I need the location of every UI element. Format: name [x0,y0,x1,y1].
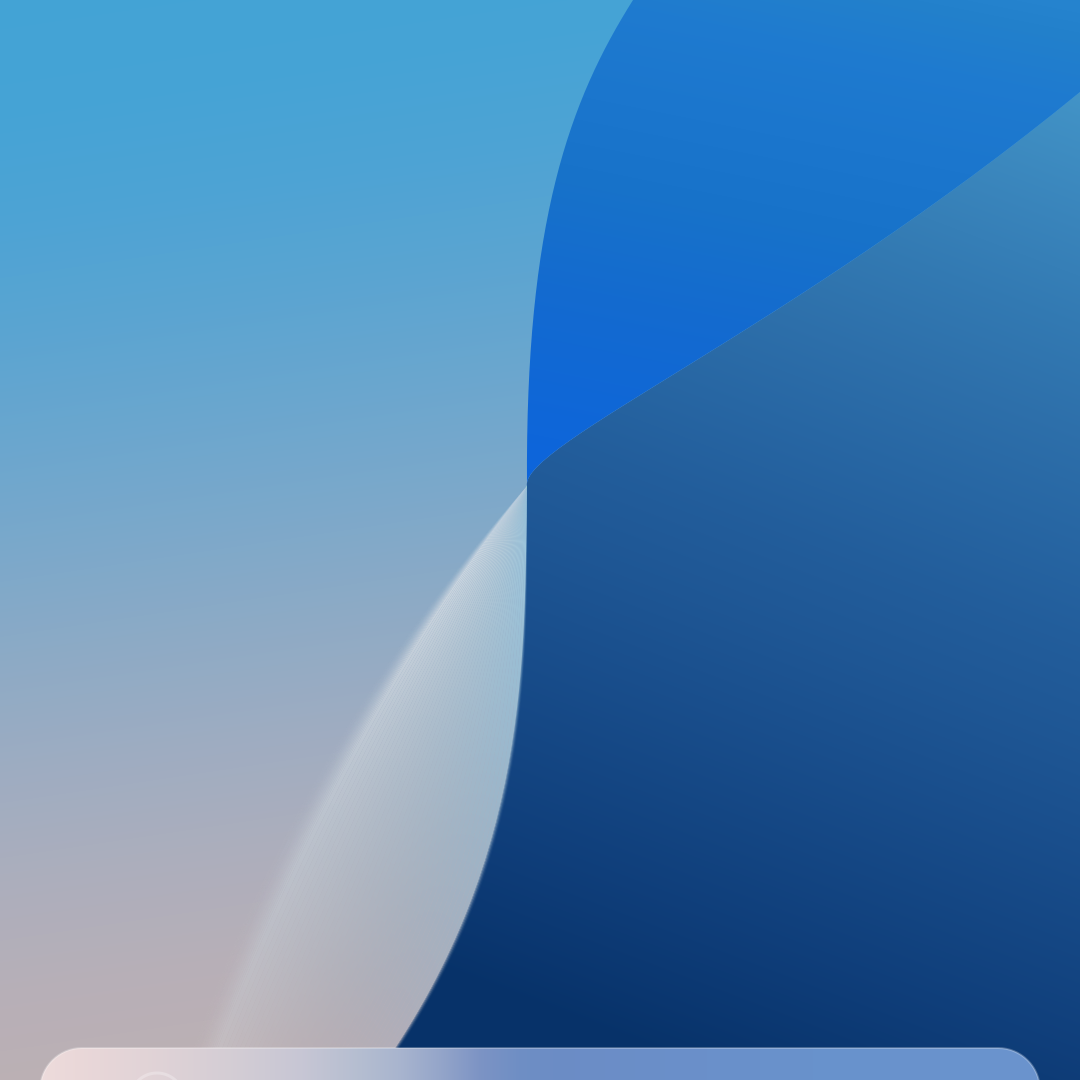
button[interactable] [0,0,1080,1080]
